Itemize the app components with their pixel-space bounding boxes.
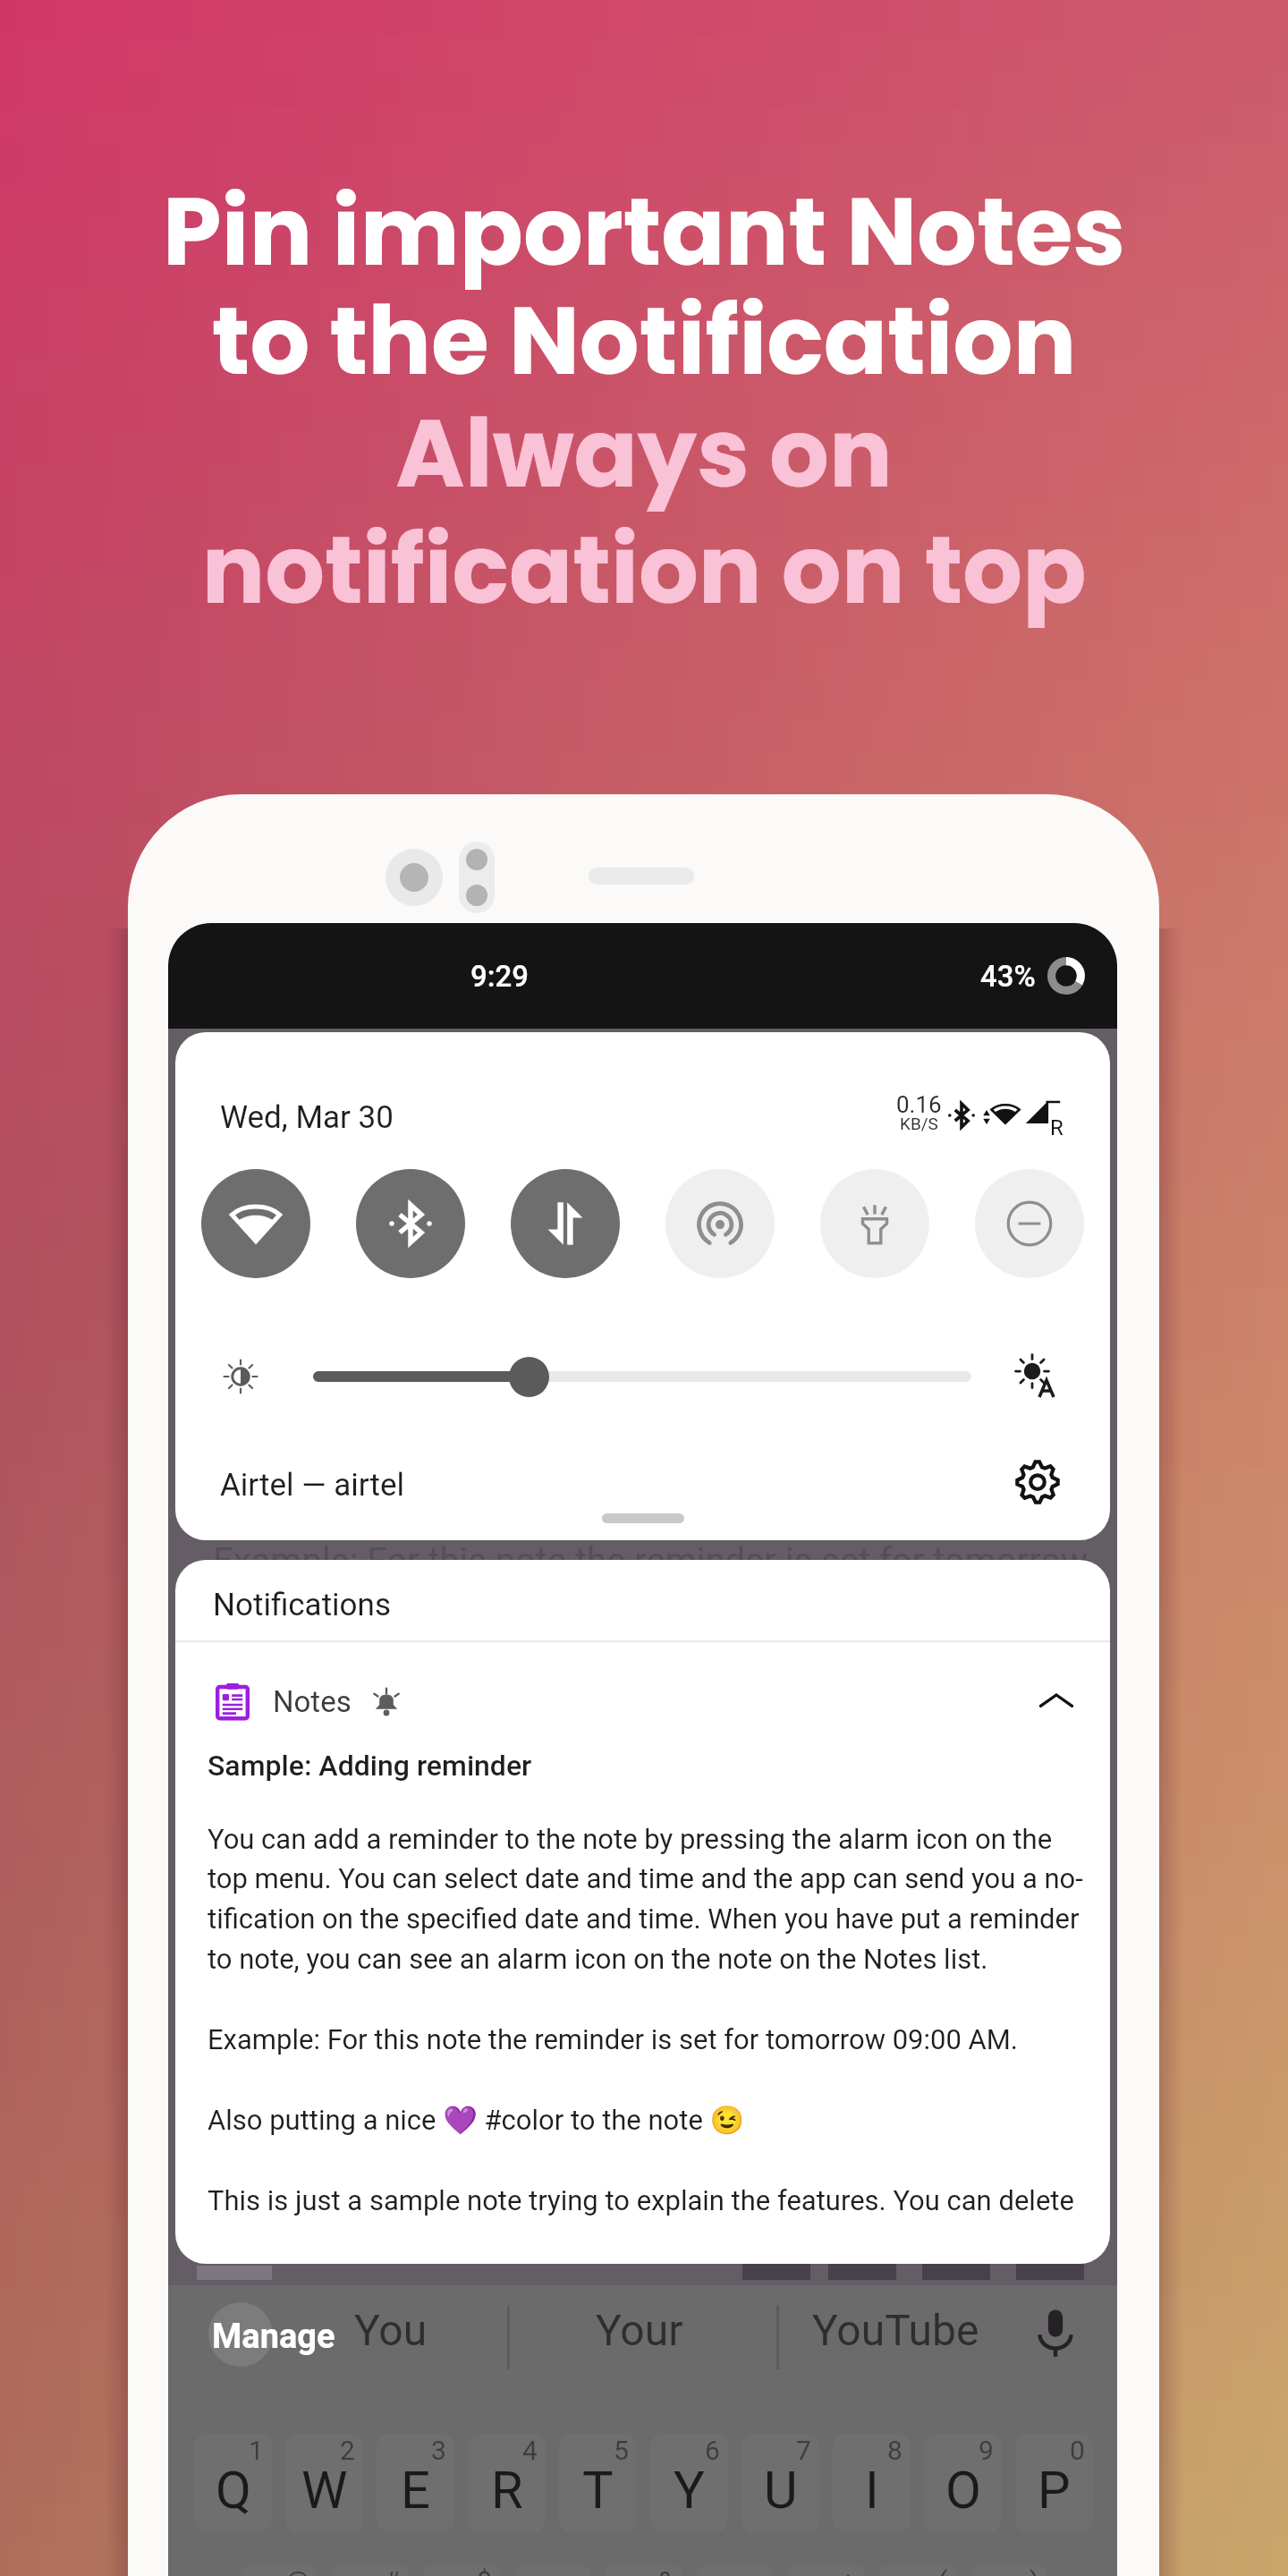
staticText: I <box>865 2460 879 2521</box>
button[interactable]: 9 <box>924 2434 1002 2532</box>
staticText: R <box>1050 1115 1063 1140</box>
staticText: # <box>384 2565 401 2576</box>
button[interactable]: 2 <box>285 2434 363 2532</box>
button[interactable]: 8 <box>833 2434 911 2532</box>
button[interactable]: 3 <box>377 2434 454 2532</box>
button[interactable]: 7 <box>741 2434 819 2532</box>
button[interactable]: Your <box>596 2305 683 2355</box>
staticText: 7 <box>796 2435 811 2466</box>
button[interactable]: Settings <box>1015 1460 1060 1504</box>
button[interactable]: Manage <box>212 2317 335 2357</box>
staticText: E <box>401 2460 430 2521</box>
button[interactable]: Hotspot <box>665 1169 775 1278</box>
staticText: Wed, Mar 30 <box>220 1099 394 1136</box>
staticText: Notes <box>273 1684 352 1719</box>
staticText: 1 <box>249 2435 264 2466</box>
button[interactable]: & <box>605 2564 682 2576</box>
button[interactable]: ) <box>970 2564 1047 2576</box>
button[interactable]: Flashlight <box>820 1169 929 1278</box>
staticText: Y <box>674 2460 705 2521</box>
staticText: Q <box>216 2460 251 2521</box>
staticText: 9 <box>979 2435 994 2466</box>
button[interactable]: 6 <box>650 2434 728 2532</box>
staticText: $ <box>477 2565 492 2576</box>
staticText: Always on notification on top <box>0 388 1288 635</box>
button[interactable]: Voice input <box>1030 2307 1081 2359</box>
staticText: W <box>301 2460 348 2521</box>
staticText: ( <box>938 2565 948 2576</box>
button[interactable]: Wi-Fi <box>201 1169 310 1278</box>
button[interactable]: Notes <box>215 1658 1076 1744</box>
staticText: O <box>945 2460 981 2521</box>
staticText: KB/S <box>900 1114 938 1133</box>
staticText: ) <box>1030 2565 1039 2576</box>
button[interactable]: 1 <box>194 2434 272 2532</box>
staticText: 9:29 <box>470 959 530 994</box>
button[interactable]: Bluetooth <box>356 1169 465 1278</box>
staticText: & <box>657 2565 674 2576</box>
button[interactable]: 5 <box>559 2434 637 2532</box>
staticText: R <box>491 2460 523 2521</box>
staticText: Notifications <box>213 1587 391 1623</box>
button[interactable]: Do not disturb <box>975 1169 1084 1278</box>
staticText: 6 <box>705 2435 720 2466</box>
button[interactable]: You <box>354 2305 428 2355</box>
button[interactable]: ( <box>878 2564 956 2576</box>
staticText: 0 <box>1070 2435 1085 2466</box>
button[interactable]: $ <box>422 2564 500 2576</box>
staticText: 8 <box>887 2435 902 2466</box>
button[interactable]: 4 <box>468 2434 546 2532</box>
staticText: Example: For this note the reminder is s… <box>213 1540 1089 1582</box>
button[interactable]: Mobile data <box>511 1169 620 1278</box>
staticText: 2 <box>340 2435 355 2466</box>
button[interactable]: YouTube <box>812 2305 979 2355</box>
staticText: @ <box>285 2565 309 2576</box>
staticText: 0.16 <box>896 1091 942 1118</box>
button[interactable]: 0 <box>1015 2434 1093 2532</box>
button[interactable]: @ <box>240 2564 318 2576</box>
staticText: 4 <box>522 2435 538 2466</box>
staticText: 43% <box>980 959 1036 994</box>
staticText: 5 <box>614 2435 629 2466</box>
staticText: T <box>582 2460 614 2521</box>
staticText: Sample: Adding reminder <box>208 1749 532 1783</box>
other: Collapse <box>1037 1682 1076 1721</box>
staticText: P <box>1038 2460 1071 2521</box>
staticText: U <box>764 2460 798 2521</box>
button[interactable]: # <box>331 2564 409 2576</box>
staticText: Pin important Notes to the Notification <box>0 166 1288 407</box>
staticText: Airtel — airtel <box>220 1467 405 1504</box>
staticText: You can add a reminder to the note by pr… <box>208 1823 1083 2217</box>
staticText: 3 <box>431 2435 446 2466</box>
